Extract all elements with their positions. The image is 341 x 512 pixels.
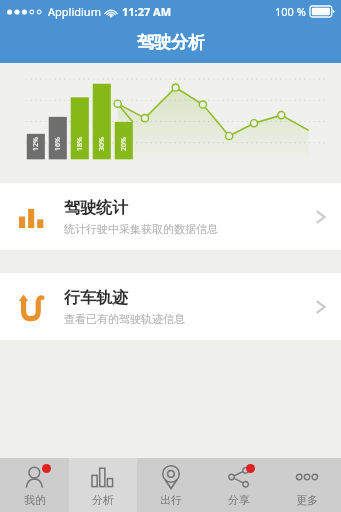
button[interactable]: 行车轨迹 [0,273,341,340]
staticText: 20% [119,137,129,151]
staticText: 更多 [296,493,318,507]
button[interactable]: 更多 [273,458,341,512]
staticText: 18% [75,137,85,151]
button[interactable]: 分享 [205,458,273,512]
staticText: 出行 [160,493,182,507]
staticText: Applidium [48,4,101,19]
staticText: 12% [31,137,41,151]
button[interactable]: 驾驶统计 [0,183,341,250]
staticText: 统计行驶中采集获取的数据信息 [64,222,218,236]
button[interactable]: 出行 [137,458,205,512]
staticText: 查看已有的驾驶轨迹信息 [64,312,185,326]
staticText: 100 % [275,4,306,19]
staticText: 行车轨迹 [64,288,128,308]
staticText: 11:27 AM [122,4,172,19]
button[interactable]: 分析 [69,458,137,512]
staticText: 30% [97,137,107,151]
staticText: 分析 [92,493,114,507]
staticText: 驾驶分析 [137,32,205,53]
button[interactable]: 我的 [0,458,69,512]
staticText: 驾驶统计 [64,198,128,218]
staticText: 16% [53,137,63,151]
staticText: 分享 [228,493,250,507]
staticText: 我的 [24,493,46,507]
